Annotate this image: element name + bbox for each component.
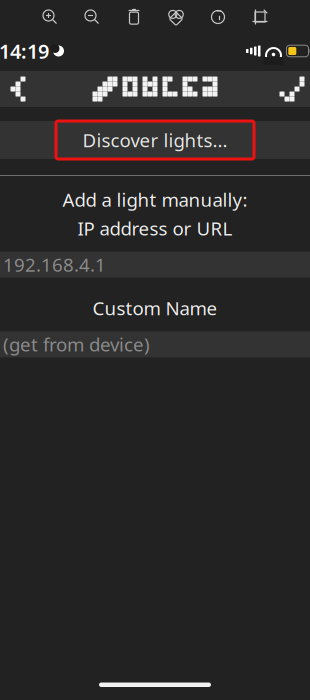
button[interactable]: Discover lights... [0, 121, 310, 159]
staticText: Custom Name [92, 296, 217, 320]
button[interactable]: Favorite [159, 3, 193, 31]
staticText: Discover lights... [82, 128, 227, 152]
button[interactable]: Done [265, 71, 310, 107]
staticText: 192.168.4.1 [3, 252, 106, 277]
staticText: Add a light manually: [62, 187, 247, 212]
button[interactable]: (get from device) [0, 331, 310, 357]
staticText: (get from device) [3, 332, 150, 357]
button[interactable]: Zoom out [75, 3, 109, 31]
button[interactable]: Rotate [201, 3, 235, 31]
button[interactable]: Delete [117, 3, 151, 31]
staticText: 14:19 [0, 38, 49, 64]
button[interactable]: Crop [243, 3, 277, 31]
button[interactable]: 192.168.4.1 [0, 252, 310, 278]
button[interactable]: Back [0, 71, 45, 107]
button[interactable]: Zoom in [33, 3, 67, 31]
staticText: IP address or URL [77, 216, 232, 241]
